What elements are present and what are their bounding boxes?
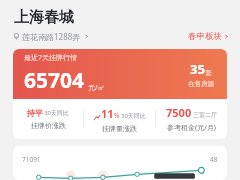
button[interactable]: 莲花南路1288弄: [13, 31, 89, 42]
button[interactable]: 11: [84, 106, 155, 133]
staticText: 7500: [166, 105, 192, 120]
staticText: 挂牌量涨跌: [102, 124, 137, 133]
staticText: 11: [101, 106, 114, 121]
button[interactable]: 春申板块: [188, 31, 229, 42]
staticText: 30天同比: [44, 109, 69, 117]
staticText: 35: [190, 60, 205, 78]
staticText: 春申板块: [188, 31, 222, 42]
staticText: 在售房源: [188, 80, 214, 88]
staticText: 参考租金(元/月): [167, 123, 216, 133]
staticText: 元/㎡: [88, 83, 105, 93]
staticText: 71091: [22, 155, 41, 164]
button[interactable]: 持平: [13, 108, 83, 130]
staticText: 65704: [24, 66, 85, 95]
staticText: 持平: [27, 108, 43, 118]
staticText: 最近7天挂牌行情: [24, 53, 78, 63]
staticText: 莲花南路1288弄: [22, 31, 81, 42]
staticText: %: [114, 111, 120, 120]
staticText: 48: [210, 155, 218, 164]
button[interactable]: 71091: [13, 146, 227, 180]
staticText: 上海春城: [14, 8, 74, 27]
staticText: 套: [205, 69, 212, 77]
staticText: 三室二厅: [193, 111, 217, 119]
staticText: 挂牌价涨跌: [31, 121, 66, 130]
staticText: 30天同比: [121, 112, 146, 120]
button[interactable]: 最近7天挂牌行情: [13, 49, 227, 139]
button[interactable]: 7500: [156, 105, 227, 133]
